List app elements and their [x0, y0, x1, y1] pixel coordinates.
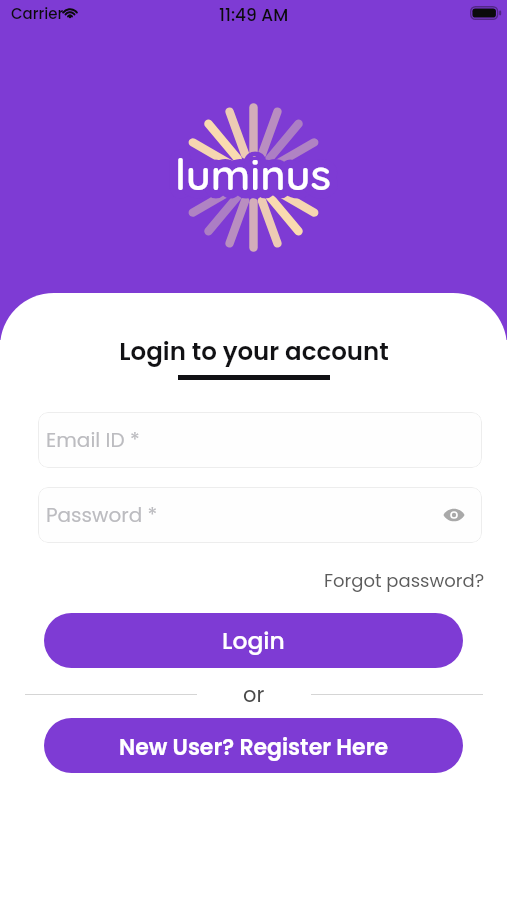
button[interactable]: Password * — [38, 487, 482, 543]
button[interactable]: New User? Register Here — [44, 718, 463, 773]
staticText: 11:49 AM — [219, 3, 289, 27]
button[interactable]: Forgot password? — [322, 566, 487, 595]
staticText: or — [243, 680, 265, 709]
button[interactable]: Email ID * — [38, 412, 482, 468]
staticText: Forgot password? — [324, 568, 485, 593]
staticText: New User? Register Here — [119, 732, 389, 763]
button[interactable]: Login — [44, 613, 463, 668]
staticText: Email ID * — [46, 426, 140, 454]
staticText: Login to your account — [119, 334, 389, 368]
staticText: Carrier — [11, 3, 64, 24]
staticText: Login — [222, 624, 285, 657]
other: Show password — [443, 504, 465, 526]
staticText: Password * — [46, 501, 158, 529]
staticText: luminus — [175, 147, 332, 201]
staticText: luminus — [175, 147, 332, 201]
